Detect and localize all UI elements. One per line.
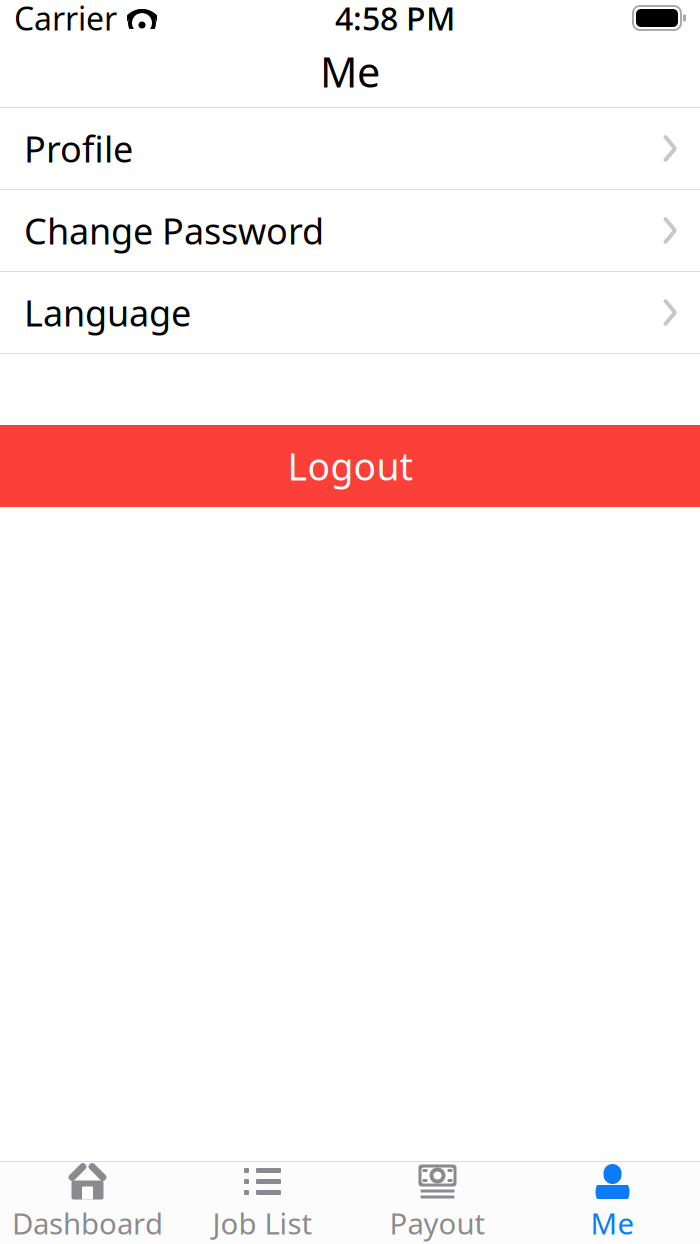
staticText: Change Password <box>24 207 324 254</box>
staticText: Dashboard <box>12 1203 163 1242</box>
button[interactable]: Language <box>0 272 700 353</box>
staticText: Me <box>590 1203 634 1242</box>
staticText: Carrier <box>14 0 117 39</box>
button[interactable]: Profile <box>0 108 700 189</box>
button[interactable]: Payout <box>350 1162 525 1244</box>
staticText: 4:58 PM <box>335 0 455 39</box>
staticText: Job List <box>212 1203 312 1242</box>
button[interactable]: Dashboard <box>0 1162 175 1244</box>
staticText: Profile <box>24 125 133 172</box>
staticText: Payout <box>389 1203 485 1242</box>
button[interactable]: Logout <box>0 425 700 507</box>
staticText: Language <box>24 289 191 336</box>
staticText: Me <box>320 44 380 99</box>
button[interactable]: Change Password <box>0 190 700 271</box>
button[interactable]: Me <box>525 1162 700 1244</box>
button[interactable]: Job List <box>175 1162 350 1244</box>
staticText: Logout <box>287 441 412 491</box>
